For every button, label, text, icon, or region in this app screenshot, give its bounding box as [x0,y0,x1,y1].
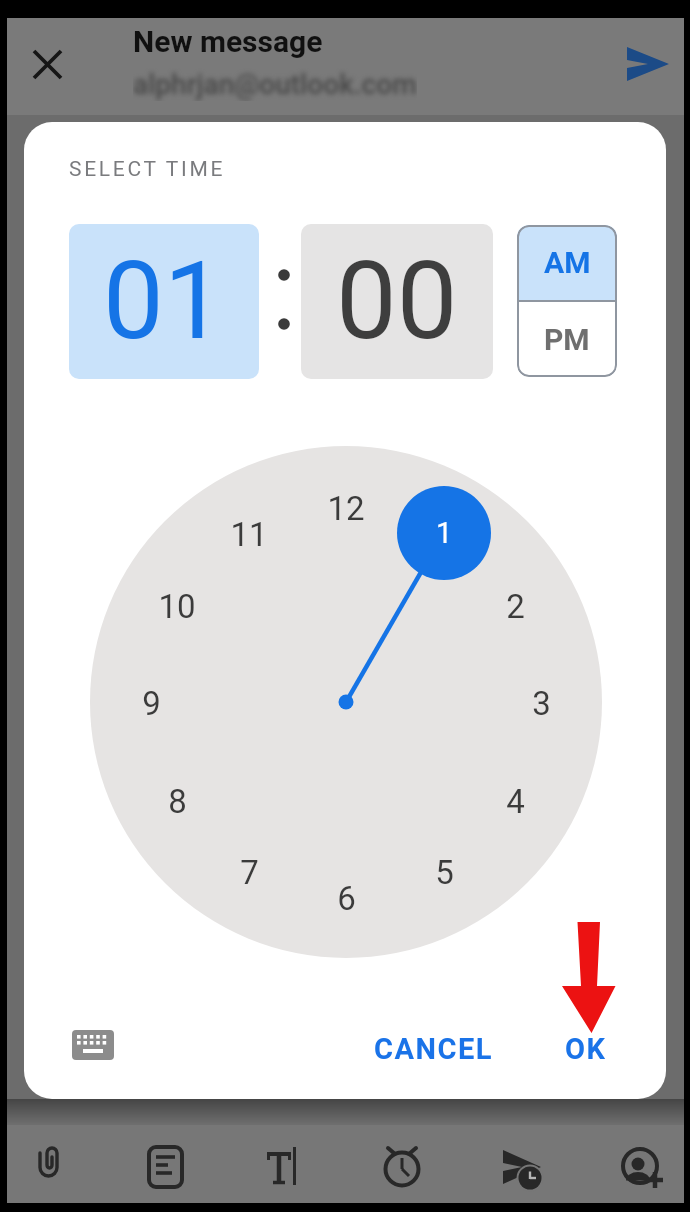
staticText: 4 [506,782,525,818]
staticText: SELECT TIME [69,157,226,182]
staticText: 9 [142,684,161,720]
staticText: 8 [168,782,187,818]
button[interactable]: CANCEL [364,1027,504,1071]
staticText: OK [565,1032,607,1066]
button[interactable] [17,1140,73,1196]
button[interactable]: AM [517,225,617,300]
button[interactable]: OK [551,1027,621,1071]
staticText: 11 [230,515,268,551]
staticText: 01 [103,238,225,365]
staticText: 00 [336,238,458,365]
staticText: 5 [435,853,454,889]
button[interactable] [25,42,70,87]
button[interactable]: 00 [301,224,493,379]
staticText: 7 [240,853,259,889]
staticText: 10 [158,587,196,623]
staticText: CANCEL [374,1032,494,1066]
button[interactable]: PM [517,302,617,377]
button[interactable] [617,1140,673,1196]
button[interactable] [620,40,676,88]
staticText: 6 [337,879,356,915]
staticText: AM [544,245,591,280]
staticText: New message [133,24,323,59]
staticText: 3 [532,684,551,720]
staticText: PM [544,322,590,357]
staticText: 2 [506,587,525,623]
button[interactable] [495,1140,551,1196]
button[interactable]: 01 [69,224,259,379]
button[interactable] [258,1140,314,1196]
button[interactable] [64,1022,122,1068]
staticText: 1 [436,516,453,550]
button[interactable] [137,1140,193,1196]
button[interactable] [375,1140,431,1196]
staticText: 12 [327,489,365,525]
staticText: alphrjan@outlook.com [133,68,417,101]
